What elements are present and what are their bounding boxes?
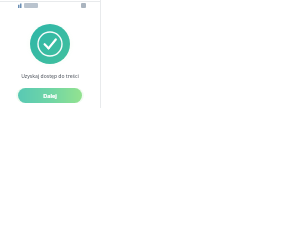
other: Status icon <box>81 3 86 8</box>
staticText: Dalej <box>43 92 57 99</box>
button[interactable]: Dalej <box>18 88 82 103</box>
staticText: Uzyskaj dostęp do treści <box>0 73 100 80</box>
